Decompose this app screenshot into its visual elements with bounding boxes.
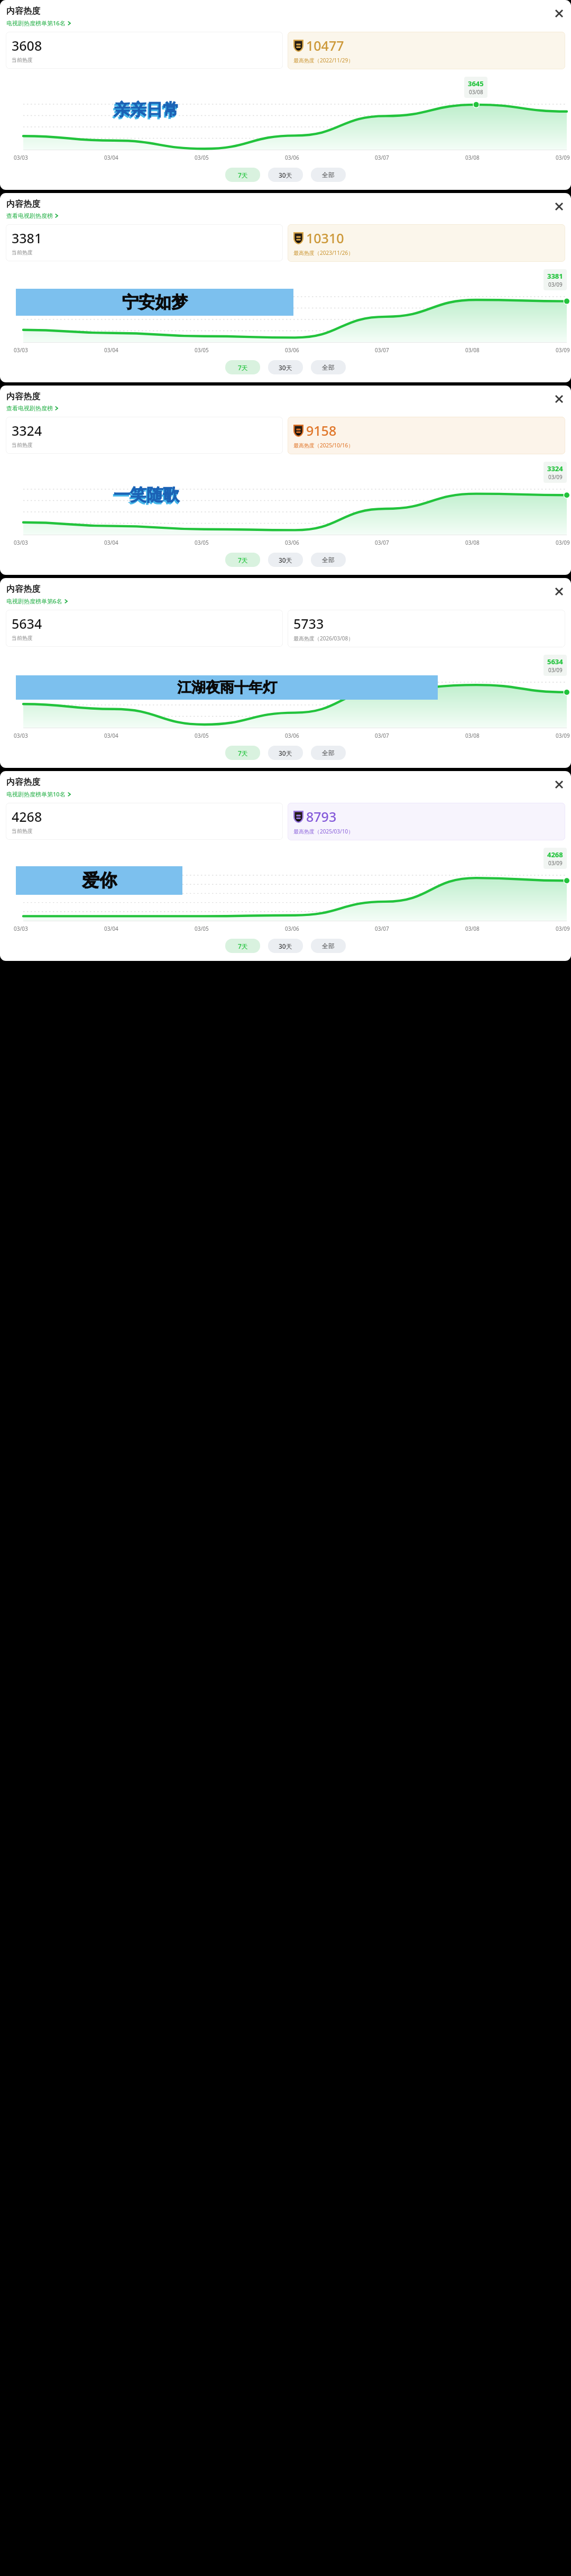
staticText: 03/08 xyxy=(465,925,480,932)
staticText: 5634 xyxy=(547,657,563,666)
button[interactable]: 全部 xyxy=(311,553,346,567)
staticText: 03/08 xyxy=(465,539,480,546)
staticText: 5733 xyxy=(293,615,324,632)
staticText: 7天 xyxy=(238,171,248,179)
button[interactable]: 9158 xyxy=(288,417,565,454)
staticText: 8793 xyxy=(306,808,337,826)
staticText: 全部 xyxy=(322,556,335,564)
button[interactable]: Close xyxy=(551,391,566,406)
staticText: 03/05 xyxy=(195,154,209,161)
button[interactable]: 8793 xyxy=(288,803,565,840)
button[interactable]: 电视剧热度榜单第6名 xyxy=(6,597,68,605)
staticText: 03/08 xyxy=(469,88,483,96)
button[interactable]: 30天 xyxy=(268,168,303,182)
staticText: 03/06 xyxy=(285,539,299,546)
button[interactable]: 查看电视剧热度榜 xyxy=(6,405,58,412)
button[interactable]: 全部 xyxy=(311,939,346,953)
staticText: 03/09 xyxy=(548,859,563,867)
staticText: 3324 xyxy=(12,421,42,439)
button[interactable]: 3608 xyxy=(6,32,283,69)
staticText: 电视剧热度榜单第6名 xyxy=(6,597,62,605)
staticText: 电视剧热度榜单第16名 xyxy=(6,19,66,27)
staticText: 7天 xyxy=(238,363,248,372)
staticText: 03/04 xyxy=(104,346,118,354)
button[interactable]: 30天 xyxy=(268,746,303,760)
button[interactable]: 电视剧热度榜单第16名 xyxy=(6,19,71,27)
staticText: 03/07 xyxy=(375,925,389,932)
button[interactable]: 全部 xyxy=(311,360,346,374)
staticText: 亲亲日常 xyxy=(113,101,178,122)
staticText: 03/07 xyxy=(375,539,389,546)
staticText: 03/03 xyxy=(14,346,28,354)
button[interactable]: Close xyxy=(551,777,566,792)
staticText: 03/08 xyxy=(465,154,480,161)
staticText: 03/09 xyxy=(548,473,563,481)
staticText: 内容热度 xyxy=(6,6,40,16)
button[interactable]: 7天 xyxy=(225,168,260,182)
button[interactable]: 电视剧热度榜单第10名 xyxy=(6,790,71,798)
button[interactable]: 3381 xyxy=(6,224,283,261)
staticText: 03/09 xyxy=(556,346,570,354)
staticText: 03/06 xyxy=(285,154,299,161)
staticText: 03/07 xyxy=(375,732,389,739)
staticText: 宁安如梦 xyxy=(122,292,188,313)
staticText: 当前热度 xyxy=(12,57,33,63)
staticText: 10310 xyxy=(306,229,344,247)
staticText: 爱你 xyxy=(82,869,117,892)
button[interactable]: 30天 xyxy=(268,939,303,953)
staticText: 03/04 xyxy=(104,925,118,932)
staticText: 03/07 xyxy=(375,346,389,354)
button[interactable]: 5733 xyxy=(288,610,565,647)
button[interactable]: 7天 xyxy=(225,360,260,374)
staticText: 03/08 xyxy=(465,732,480,739)
staticText: 当前热度 xyxy=(12,635,33,641)
button[interactable]: Close xyxy=(551,199,566,214)
button[interactable]: Close xyxy=(551,6,566,21)
staticText: 30天 xyxy=(279,363,292,372)
staticText: 亲亲日常 xyxy=(114,99,179,120)
staticText: 03/05 xyxy=(195,732,209,739)
staticText: 3324 xyxy=(547,464,563,473)
staticText: 内容热度 xyxy=(6,391,40,402)
button[interactable]: 10310 xyxy=(288,224,565,262)
button[interactable]: 5634 xyxy=(6,610,283,647)
staticText: 一笑随歌 xyxy=(114,484,179,505)
staticText: 全部 xyxy=(322,749,335,757)
staticText: 03/09 xyxy=(548,666,563,674)
button[interactable]: 全部 xyxy=(311,746,346,760)
staticText: 03/09 xyxy=(556,539,570,546)
staticText: 查看电视剧热度榜 xyxy=(6,212,53,219)
staticText: 03/09 xyxy=(548,281,563,288)
staticText: 3320 xyxy=(0,293,21,294)
button[interactable]: 7天 xyxy=(225,939,260,953)
button[interactable]: 30天 xyxy=(268,360,303,374)
staticText: 03/05 xyxy=(195,925,209,932)
button[interactable]: 全部 xyxy=(311,168,346,182)
button[interactable]: 3324 xyxy=(6,417,283,454)
staticText: 当前热度 xyxy=(12,442,33,448)
staticText: 电视剧热度榜单第10名 xyxy=(6,790,66,798)
staticText: 03/03 xyxy=(14,925,28,932)
staticText: 03/06 xyxy=(285,732,299,739)
button[interactable]: 7天 xyxy=(225,553,260,567)
staticText: 全部 xyxy=(322,363,335,371)
button[interactable]: 4268 xyxy=(6,803,283,840)
button[interactable]: 10477 xyxy=(288,32,565,69)
button[interactable]: Close xyxy=(551,584,566,599)
staticText: 03/05 xyxy=(195,539,209,546)
button[interactable]: 7天 xyxy=(225,746,260,760)
staticText: 30天 xyxy=(279,171,292,179)
button[interactable]: 30天 xyxy=(268,553,303,567)
staticText: 一笑随歌 xyxy=(113,486,178,507)
button[interactable]: 查看电视剧热度榜 xyxy=(6,212,58,219)
staticText: 30天 xyxy=(279,749,292,757)
staticText: 03/09 xyxy=(556,154,570,161)
